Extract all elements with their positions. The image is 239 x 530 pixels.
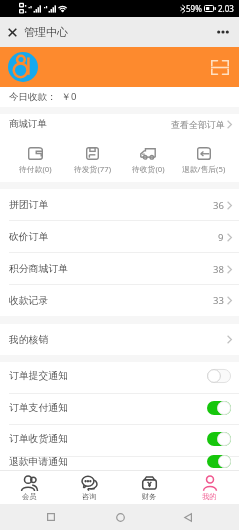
button[interactable]: Back	[177, 506, 199, 528]
staticText: 管理中心	[24, 25, 68, 39]
button[interactable]: 待发货(77)	[64, 138, 120, 182]
button[interactable]: 收款记录	[0, 285, 239, 316]
staticText: 9	[218, 231, 224, 244]
button[interactable]: Toggle on	[207, 455, 231, 468]
staticText: 积分商城订单	[9, 263, 68, 275]
button[interactable]: 积分商城订单	[0, 253, 239, 285]
staticText: 退款申请通知	[9, 456, 68, 468]
staticText: 今日收款： ￥0	[9, 90, 77, 103]
staticText: 33	[213, 294, 224, 307]
button[interactable]: 订单收货通知	[0, 425, 239, 457]
staticText: 待付款(0)	[19, 164, 52, 175]
staticText: 收款记录	[9, 295, 49, 307]
button[interactable]: 订单提交通知	[0, 362, 239, 394]
staticText: 财务	[142, 492, 157, 501]
staticText: 商城订单	[9, 118, 47, 130]
button[interactable]: 查看全部订单	[171, 119, 232, 130]
button[interactable]: 拼团订单	[0, 189, 239, 221]
button[interactable]: 退款申请通知	[0, 457, 239, 470]
button[interactable]: 我的核销	[0, 324, 239, 355]
staticText: 59%	[186, 3, 202, 14]
staticText: 我的核销	[9, 334, 49, 346]
staticText: 咨询	[82, 492, 97, 501]
staticText: 砍价订单	[9, 231, 49, 243]
button[interactable]: More options	[212, 21, 234, 43]
staticText: 退款/售后(5)	[182, 164, 226, 175]
staticText: 我的	[202, 492, 217, 501]
button[interactable]: 待收货(0)	[120, 138, 176, 182]
button[interactable]: 砍价订单	[0, 221, 239, 253]
button[interactable]: Toggle off	[207, 369, 231, 383]
staticText: 订单收货通知	[9, 433, 68, 445]
button[interactable]: 订单支付通知	[0, 394, 239, 425]
button[interactable]: Scan QR code	[209, 56, 231, 78]
button[interactable]: 财务	[119, 471, 179, 504]
button[interactable]: 退款/售后(5)	[176, 138, 232, 182]
button[interactable]: Recent apps	[40, 506, 62, 528]
button[interactable]: Home	[109, 506, 131, 528]
staticText: 会员	[22, 492, 37, 501]
button[interactable]: 咨询	[59, 471, 119, 504]
staticText: 查看全部订单	[171, 119, 225, 130]
button[interactable]: Close	[3, 23, 21, 41]
staticText: 待发货(77)	[74, 164, 111, 175]
staticText: 订单支付通知	[9, 402, 68, 414]
button[interactable]: 我的	[179, 471, 239, 504]
button[interactable]: 会员	[0, 471, 59, 504]
staticText: 38	[213, 263, 224, 276]
staticText: 待收货(0)	[132, 164, 165, 175]
staticText: 订单提交通知	[9, 370, 68, 382]
button[interactable]: Toggle on	[207, 401, 231, 415]
staticText: 拼团订单	[9, 199, 49, 211]
staticText: 36	[213, 199, 224, 212]
button[interactable]: 待付款(0)	[7, 138, 64, 182]
button[interactable]: Toggle on	[207, 432, 231, 446]
staticText: 2.03	[218, 3, 234, 14]
